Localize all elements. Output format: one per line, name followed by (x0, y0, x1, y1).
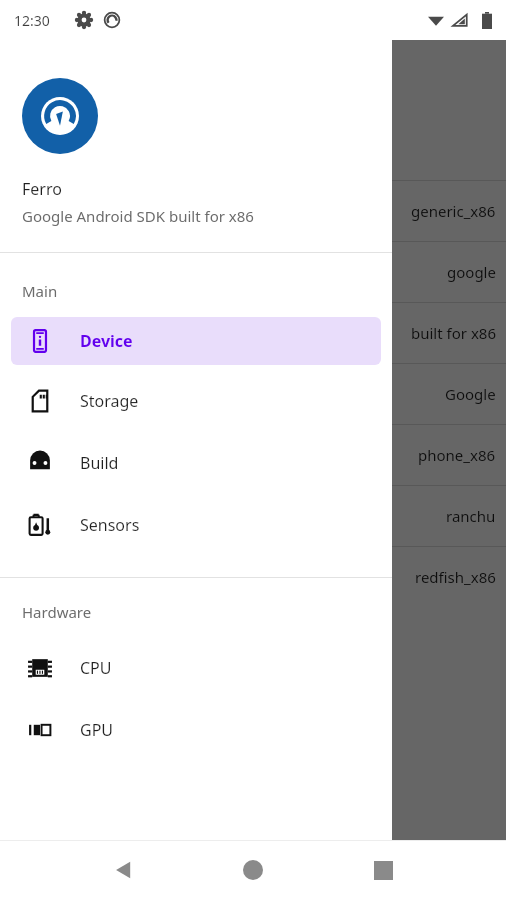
staticText: Google Android SDK built for x86 (22, 206, 254, 226)
button[interactable]: Build (11, 439, 381, 487)
staticText: ranchu (446, 506, 496, 526)
staticText: phone_x86 (418, 445, 496, 465)
button[interactable]: Storage (11, 377, 381, 425)
staticText: redfish_x86 (415, 567, 496, 587)
staticText: Sensors (80, 514, 140, 536)
staticText: Ferro (22, 178, 62, 200)
button[interactable]: Back (113, 859, 135, 881)
other: Settings status icon (76, 12, 92, 28)
staticText: Google (445, 384, 496, 404)
button[interactable]: GPU (11, 706, 381, 754)
button[interactable]: CPU (11, 644, 381, 692)
staticText: CPU (80, 657, 112, 679)
button[interactable]: Home (243, 860, 263, 880)
button[interactable]: Sensors (11, 501, 381, 549)
staticText: generic_x86 (411, 201, 496, 221)
button[interactable]: Device (11, 317, 381, 365)
staticText: 12:30 (14, 11, 50, 30)
staticText: Hardware (22, 602, 92, 622)
staticText: Storage (80, 390, 139, 412)
staticText: Build (80, 452, 119, 474)
staticText: Main (22, 281, 58, 301)
staticText: built for x86 (411, 323, 496, 343)
staticText: google (447, 262, 496, 282)
staticText: GPU (80, 719, 114, 741)
staticText: Device (80, 330, 133, 352)
other: Screenshot status icon (104, 12, 120, 28)
